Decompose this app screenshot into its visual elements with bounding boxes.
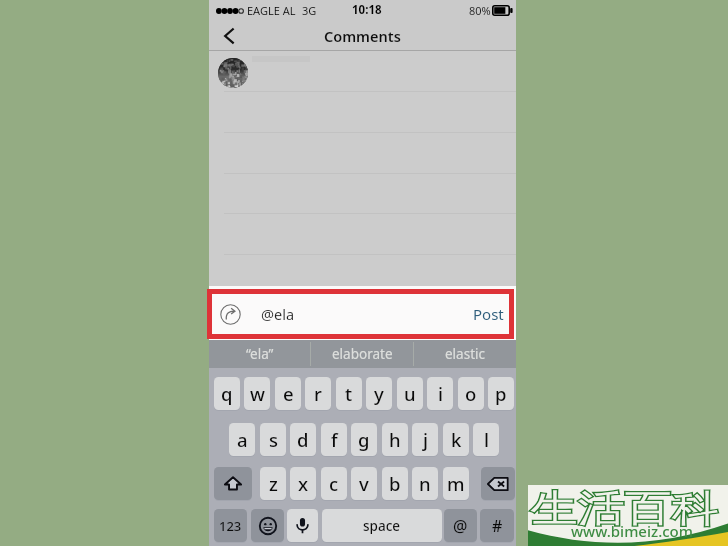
staticText: l [484,427,489,452]
button[interactable]: Reply [212,294,509,334]
staticText: o [465,381,477,406]
staticText: v [359,471,369,496]
staticText: @ [453,515,468,537]
button[interactable]: b [382,467,408,500]
button[interactable]: q [214,377,240,410]
staticText: m [447,471,465,496]
button[interactable]: o [458,377,484,410]
button[interactable]: x [290,467,316,500]
button[interactable]: k [443,423,469,456]
staticText: 3G [302,3,317,18]
staticText: i [438,381,443,406]
button[interactable]: d [290,423,316,456]
button[interactable]: f [321,423,347,456]
staticText: # [492,515,503,537]
staticText: b [389,471,401,496]
staticText: space [363,517,401,535]
staticText: p [495,381,507,406]
button[interactable]: # [480,509,514,542]
staticText: r [314,381,322,406]
staticText: t [345,381,353,406]
button[interactable]: w [244,377,270,410]
staticText: d [297,427,309,452]
button[interactable]: shift [214,467,252,500]
staticText: c [329,471,339,496]
button[interactable]: u [397,377,423,410]
button[interactable]: i [427,377,453,410]
staticText: s [269,427,278,452]
staticText: 80% [469,3,491,18]
staticText: h [389,427,401,452]
button[interactable]: l [473,423,499,456]
staticText: @ela [261,304,295,324]
staticText: 生活百科 [530,486,718,533]
staticText: Post [473,304,504,324]
button[interactable]: Post [473,304,504,324]
button[interactable]: Back [215,22,243,50]
button[interactable]: p [488,377,514,410]
button[interactable]: a [229,423,255,456]
other: Reply [220,304,241,325]
button[interactable]: j [412,423,438,456]
staticText: j [423,427,428,452]
button[interactable]: space [322,509,442,542]
staticText: z [269,471,278,496]
button[interactable]: y [366,377,392,410]
staticText: g [358,427,370,452]
staticText: u [404,381,416,406]
staticText: 10:18 [352,2,382,18]
staticText: e [283,381,294,406]
button[interactable]: n [412,467,438,500]
staticText: elastic [445,345,485,363]
button[interactable]: back [481,467,515,500]
button[interactable]: elaborate [311,339,413,368]
button[interactable]: h [382,423,408,456]
button[interactable]: elastic [414,339,516,368]
staticText: EAGLE AL [247,3,296,18]
staticText: w [250,381,265,406]
button[interactable]: t [336,377,362,410]
staticText: k [451,427,462,452]
button[interactable]: r [305,377,331,410]
button[interactable]: m [443,467,469,500]
staticText: x [298,471,309,496]
staticText: y [374,381,384,406]
button[interactable]: v [351,467,377,500]
button[interactable]: 123 [214,509,247,542]
staticText: q [221,381,233,406]
button[interactable]: e [275,377,301,410]
button[interactable]: @ [444,509,477,542]
staticText: “ela” [246,345,274,363]
button[interactable]: c [321,467,347,500]
staticText: n [419,471,431,496]
staticText: elaborate [332,345,393,363]
button[interactable]: g [351,423,377,456]
staticText: 123 [219,517,242,535]
staticText: www.bimeiz.com [571,521,693,541]
button[interactable]: mic [287,509,318,542]
button[interactable]: “ela” [209,339,310,368]
button[interactable]: s [260,423,286,456]
staticText: Comments [324,26,401,46]
button[interactable]: emoji [251,509,284,542]
staticText: a [237,427,248,452]
staticText: f [331,427,338,452]
button[interactable]: z [260,467,286,500]
